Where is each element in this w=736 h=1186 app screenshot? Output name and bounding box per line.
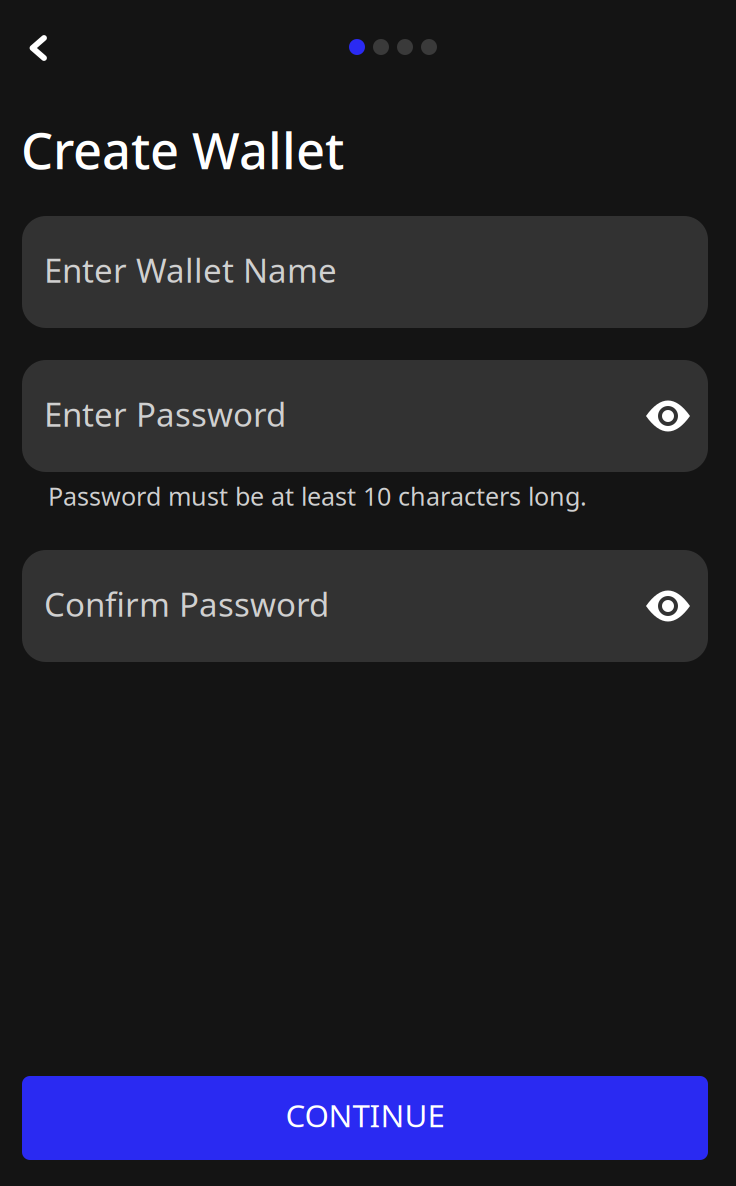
button[interactable]: Show password	[632, 570, 704, 642]
button[interactable]: Show password	[632, 380, 704, 452]
staticText: Enter Password	[44, 391, 286, 436]
staticText: Create Wallet	[21, 115, 344, 184]
button[interactable]: Enter Wallet Name	[22, 216, 708, 328]
staticText: CONTINUE	[285, 1094, 444, 1136]
button[interactable]: Confirm Password	[22, 550, 708, 662]
staticText: Password must be at least 10 characters …	[48, 479, 587, 513]
staticText: Confirm Password	[44, 581, 329, 626]
button[interactable]: Enter Password	[22, 360, 708, 472]
staticText: Enter Wallet Name	[44, 247, 337, 292]
button[interactable]: Back	[11, 20, 67, 76]
button[interactable]: Page 1 of 4	[349, 39, 437, 55]
button[interactable]: CONTINUE	[22, 1076, 708, 1160]
